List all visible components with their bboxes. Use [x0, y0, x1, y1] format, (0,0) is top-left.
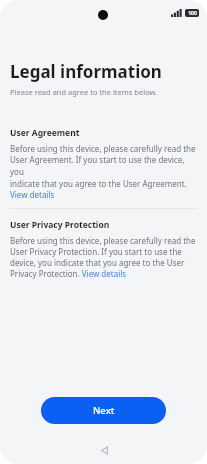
staticText: indicate that you agree to the User Agre…	[10, 178, 187, 189]
staticText: device, you indicate that you agree to t…	[10, 257, 185, 268]
staticText: Before using this device, please careful…	[10, 143, 196, 154]
staticText: Next	[93, 404, 115, 417]
staticText: User Privacy Protection	[10, 219, 110, 231]
staticText: Privacy Protection. View details	[10, 268, 127, 279]
staticText: Legal information	[10, 60, 162, 83]
staticText: Please read and agree to the items below…	[10, 87, 158, 97]
staticText: View details	[10, 189, 55, 200]
staticText: Before using this device, please careful…	[10, 235, 196, 246]
button[interactable]: Back	[93, 440, 115, 460]
staticText: User Agreement	[10, 127, 80, 139]
staticText: User Privacy Protection. If you start to…	[10, 246, 182, 257]
staticText: 100	[188, 10, 197, 17]
staticText: User Agreement. If you start to use the …	[10, 154, 197, 178]
button[interactable]: Privacy Protection. View details	[10, 268, 127, 279]
button[interactable]: Next	[41, 397, 166, 424]
button[interactable]: View details	[10, 189, 55, 200]
